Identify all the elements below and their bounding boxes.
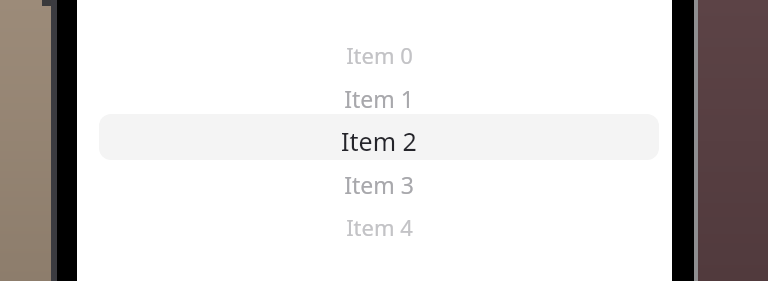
staticText: Item 2	[341, 124, 417, 158]
staticText: Item 0	[346, 40, 413, 70]
button[interactable]: Item 0	[99, 34, 659, 76]
button[interactable]: Item 2	[99, 120, 659, 162]
staticText: Item 3	[344, 169, 414, 200]
button[interactable]: Item 1	[99, 77, 659, 119]
staticText: Item 4	[346, 212, 413, 242]
staticText: Item 1	[344, 83, 414, 114]
button[interactable]: Item 4	[99, 206, 659, 248]
button[interactable]: Item 3	[99, 163, 659, 205]
